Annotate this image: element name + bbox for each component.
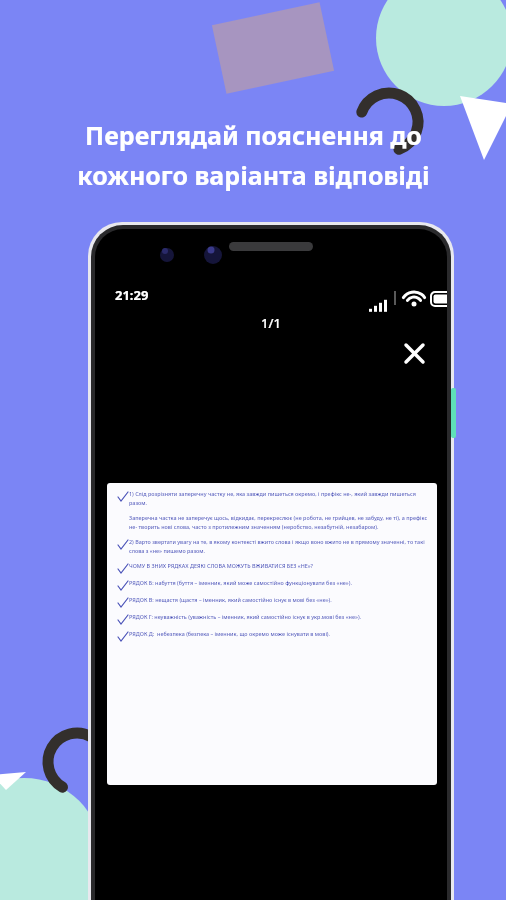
staticText: 1) Слід розрізняти заперечну частку не, …	[129, 490, 428, 507]
staticText: РЯДОК Г: неуважність (уважність – іменни…	[129, 613, 362, 620]
staticText: 21:29	[115, 286, 149, 304]
staticText: ЧОМУ В ЗНИХ РЯДКАХ ДЕЯКІ СЛОВА МОЖУТЬ ВЖ…	[129, 562, 314, 569]
staticText: 1/1	[261, 314, 281, 332]
staticText: кожного варіанта відповіді	[77, 158, 430, 192]
button[interactable]: 1) Слід розрізняти заперечну частку не, …	[107, 483, 437, 785]
button[interactable]: Close	[395, 334, 433, 372]
staticText: Заперечна частка не заперечує щось, відк…	[129, 514, 428, 531]
staticText: РЯДОК Б: набуття (буття – іменник, який …	[129, 579, 352, 586]
staticText: РЯДОК В: нещастя (щастя – іменник, який …	[129, 596, 332, 603]
staticText: РЯДОК Д: небезпека (безпека – іменник, щ…	[129, 630, 331, 637]
staticText: Переглядай пояснення до	[85, 118, 422, 152]
staticText: 2) Варто звертати увагу на те, в якому к…	[129, 538, 428, 555]
